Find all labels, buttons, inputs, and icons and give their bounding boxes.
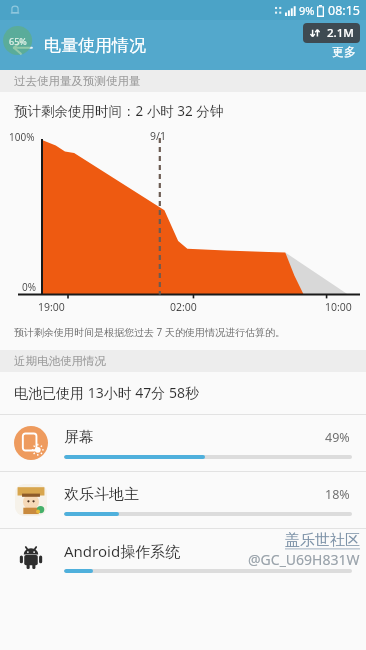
staticText: 9/1: [150, 129, 166, 143]
staticText: 过去使用量及预测使用量: [14, 74, 141, 88]
staticText: 盖乐世社区: [285, 531, 360, 550]
staticText: 电量使用情况: [44, 35, 146, 56]
button[interactable]: 欢乐斗地主: [0, 472, 366, 528]
staticText: 9%: [299, 3, 315, 18]
button[interactable]: 2.1M: [303, 23, 360, 43]
staticText: 02:00: [170, 300, 197, 314]
staticText: 0%: [22, 280, 37, 294]
button[interactable]: 屏幕: [0, 415, 366, 471]
staticText: 49%: [325, 429, 350, 446]
staticText: 欢乐斗地主: [64, 485, 325, 504]
button[interactable]: Android操作系统: [0, 529, 366, 585]
staticText: 65%: [9, 35, 27, 47]
staticText: 预计剩余使用时间是根据您过去 7 天的使用情况进行估算的。: [14, 325, 285, 339]
staticText: 近期电池使用情况: [14, 354, 106, 368]
staticText: 2.1M: [327, 25, 354, 41]
staticText: 更多: [332, 44, 356, 59]
staticText: 预计剩余使用时间：2 小时 32 分钟: [14, 102, 224, 120]
staticText: @GC_U69H831W: [248, 550, 360, 569]
staticText: 19:00: [38, 300, 65, 314]
button[interactable]: Back: [0, 23, 44, 67]
staticText: Android操作系统: [64, 541, 352, 561]
staticText: 18%: [325, 486, 350, 503]
staticText: 08:15: [328, 2, 360, 19]
staticText: 100%: [9, 130, 35, 144]
staticText: 电池已使用 13小时 47分 58秒: [14, 383, 199, 402]
staticText: 屏幕: [64, 428, 325, 447]
staticText: 10:00: [325, 300, 352, 314]
button[interactable]: 更多: [328, 44, 360, 59]
